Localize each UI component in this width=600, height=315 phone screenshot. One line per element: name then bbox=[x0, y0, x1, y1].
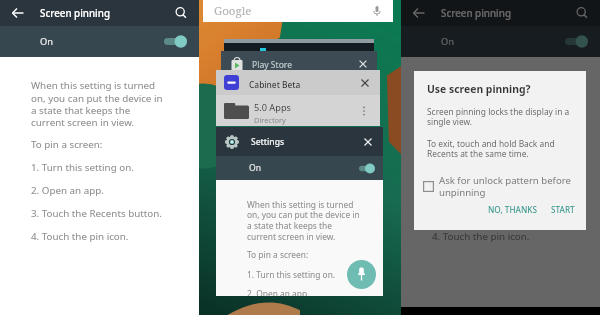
staticText: 1. Turn this setting on. bbox=[247, 269, 336, 280]
staticText: NO, THANKS bbox=[488, 204, 537, 215]
button[interactable]: 5.0 Apps bbox=[216, 95, 380, 126]
staticText: To pin a screen: bbox=[31, 138, 103, 151]
staticText: Cabinet Beta bbox=[249, 79, 301, 90]
staticText: When this setting is turned on, you can … bbox=[31, 79, 163, 128]
staticText: Screen pinning bbox=[40, 7, 110, 20]
staticText: On bbox=[40, 35, 54, 48]
staticText: 4. Touch the pin icon. bbox=[31, 230, 129, 243]
button[interactable]: Search bbox=[570, 1, 594, 25]
button[interactable]: Pin bbox=[347, 260, 376, 289]
staticText: Directory bbox=[254, 115, 286, 125]
staticText: When this setting is turned on, you can … bbox=[247, 199, 360, 243]
staticText: When this setting is turned on, you can … bbox=[432, 79, 564, 128]
button[interactable]: Close Settings bbox=[361, 135, 375, 149]
button[interactable]: START bbox=[547, 201, 579, 218]
staticText: 2. Open an app. bbox=[432, 184, 505, 197]
button[interactable]: Voice search bbox=[369, 3, 385, 19]
button[interactable]: Play Store bbox=[221, 51, 377, 77]
staticText: Use screen pinning? bbox=[427, 82, 531, 96]
staticText: 4. Touch the pin icon. bbox=[432, 230, 530, 243]
button[interactable]: On bbox=[401, 26, 600, 57]
staticText: 2. Open an app. bbox=[31, 184, 104, 197]
button[interactable]: On bbox=[216, 156, 383, 180]
button[interactable]: On bbox=[0, 26, 199, 57]
button[interactable]: Google bbox=[203, 0, 393, 22]
button[interactable]: NO, THANKS bbox=[484, 201, 541, 218]
staticText: On bbox=[249, 162, 262, 174]
staticText: Ask for unlock pattern before unpinning bbox=[439, 174, 571, 198]
staticText: 3. Touch the Recents button. bbox=[432, 207, 563, 220]
button[interactable]: More options bbox=[357, 104, 371, 118]
staticText: Play Store bbox=[252, 59, 293, 71]
staticText: 3. Touch the Recents button. bbox=[31, 207, 162, 220]
staticText: On bbox=[441, 35, 455, 48]
button[interactable]: Back bbox=[6, 1, 30, 25]
staticText: 2. Open an app. bbox=[247, 288, 310, 296]
staticText: To exit, touch and hold Back and Recents… bbox=[427, 138, 555, 160]
button[interactable]: Back bbox=[407, 1, 431, 25]
staticText: 1. Turn this setting on. bbox=[31, 161, 134, 174]
button[interactable]: Cabinet Beta bbox=[216, 70, 380, 95]
staticText: Google bbox=[214, 3, 252, 19]
staticText: To pin a screen: bbox=[247, 249, 309, 260]
button[interactable]: Close Play Store bbox=[356, 57, 370, 71]
button[interactable]: Close Cabinet Beta bbox=[358, 76, 372, 90]
button[interactable]: Settings bbox=[216, 127, 383, 156]
staticText: Settings bbox=[251, 136, 285, 148]
staticText: 5.0 Apps bbox=[254, 101, 291, 114]
staticText: To pin a screen: bbox=[432, 138, 504, 151]
staticText: Screen pinning bbox=[441, 7, 511, 20]
staticText: Screen pinning locks the display in a si… bbox=[427, 106, 570, 128]
staticText: START bbox=[551, 204, 575, 215]
button[interactable]: Search bbox=[169, 1, 193, 25]
button[interactable]: Ask for unlock pattern before unpinning bbox=[423, 174, 583, 198]
